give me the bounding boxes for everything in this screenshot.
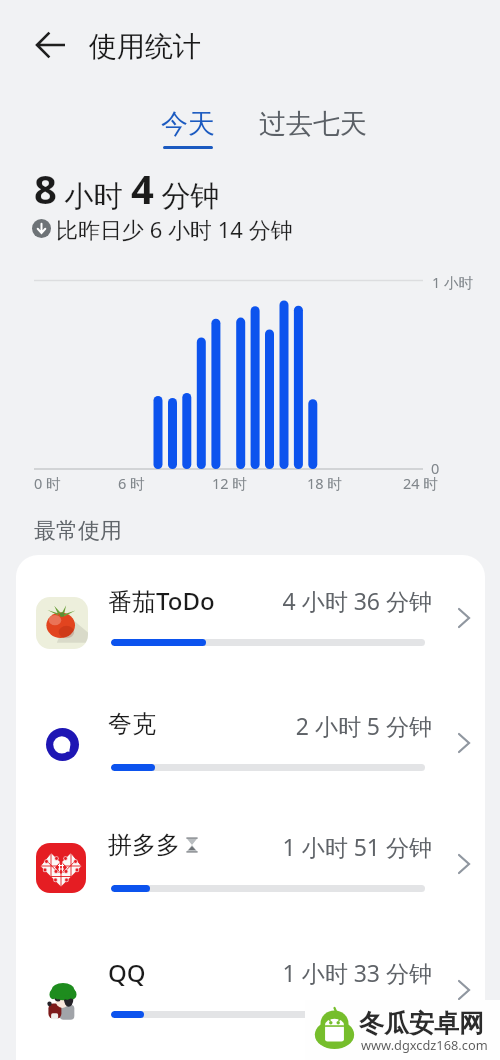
- staticText: 4: [131, 161, 154, 215]
- button[interactable]: Open details: [445, 724, 483, 762]
- staticText: 最常使用: [34, 517, 122, 545]
- staticText: 过去七天: [259, 107, 367, 141]
- button[interactable]: Back: [26, 20, 76, 70]
- button[interactable]: QQ: [16, 927, 485, 1049]
- staticText: 1 小时 51 分钟: [232, 831, 432, 862]
- staticText: 1 小时 33 分钟: [232, 957, 432, 988]
- staticText: 0 时: [34, 473, 61, 493]
- button[interactable]: 过去七天: [250, 107, 376, 149]
- staticText: 0: [431, 458, 440, 478]
- button[interactable]: 夸克: [16, 680, 485, 802]
- button[interactable]: 拼多多: [16, 801, 485, 923]
- staticText: 24 时: [403, 473, 438, 493]
- staticText: 18 时: [307, 473, 342, 493]
- staticText: 夸克: [108, 709, 156, 739]
- button[interactable]: Open details: [445, 845, 483, 883]
- button[interactable]: 今天: [148, 107, 228, 157]
- button[interactable]: Open details: [445, 971, 483, 1009]
- staticText: 使用统计: [89, 29, 201, 64]
- button[interactable]: 番茄ToDo: [16, 555, 485, 677]
- staticText: 分钟: [154, 175, 220, 215]
- staticText: 4 小时 36 分钟: [232, 585, 432, 616]
- staticText: 今天: [161, 107, 215, 141]
- staticText: 番茄ToDo: [108, 584, 215, 617]
- button[interactable]: Open details: [445, 599, 483, 637]
- staticText: 12 时: [212, 473, 247, 493]
- staticText: 拼多多: [108, 830, 180, 860]
- staticText: 比昨日少 6 小时 14 分钟: [56, 214, 293, 244]
- staticText: 2 小时 5 分钟: [232, 710, 432, 741]
- staticText: 6 时: [118, 473, 145, 493]
- staticText: 8: [34, 161, 57, 215]
- staticText: 小时: [57, 175, 131, 215]
- staticText: 1 小时: [432, 272, 474, 292]
- staticText: 冬瓜安卓网: [359, 1008, 484, 1039]
- staticText: www.dgxcdz168.com: [361, 1036, 488, 1053]
- staticText: QQ: [108, 956, 146, 989]
